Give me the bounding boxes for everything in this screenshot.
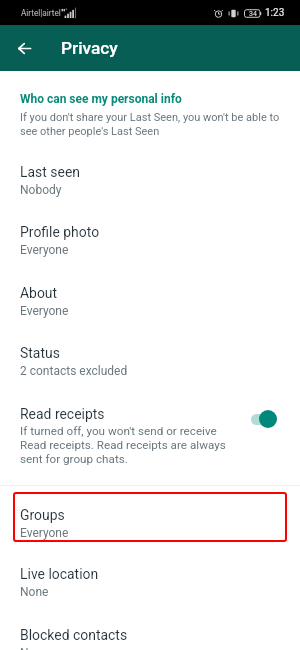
button[interactable]: Blocked contacts (0, 619, 300, 650)
staticText: Everyone (20, 526, 69, 540)
button[interactable]: Back (9, 33, 39, 63)
button[interactable]: Read receipts (0, 398, 300, 478)
staticText: Live location (20, 566, 99, 582)
staticText: If turned off, you won't send or receive… (20, 424, 226, 466)
button[interactable]: Live location (0, 558, 300, 610)
button[interactable]: About (0, 277, 300, 329)
staticText: Privacy (61, 38, 118, 58)
staticText: Blocked contacts (20, 627, 128, 643)
button[interactable]: Profile photo (0, 216, 300, 268)
staticText: Read receipts (20, 406, 105, 422)
staticText: None (20, 585, 49, 599)
staticText: Everyone (20, 243, 69, 257)
staticText: 2 contacts excluded (20, 364, 128, 378)
staticText: Groups (20, 507, 65, 523)
button[interactable]: Status (0, 337, 300, 389)
staticText: Airtel|airtel (21, 8, 61, 18)
button[interactable]: Groups (13, 492, 287, 542)
staticText: About (20, 285, 58, 301)
staticText: Status (20, 345, 60, 361)
staticText: 1:23 (265, 7, 285, 19)
staticText: Everyone (20, 304, 69, 318)
staticText: 34 (249, 10, 257, 18)
staticText: Who can see my personal info (20, 92, 182, 106)
button[interactable]: Last seen (0, 156, 300, 208)
staticText: Nobody (20, 183, 62, 197)
staticText: Last seen (20, 164, 80, 180)
staticText: None (20, 646, 49, 650)
button[interactable]: Read receipts toggle (250, 410, 278, 428)
staticText: Profile photo (20, 224, 100, 240)
staticText: If you don't share your Last Seen, you w… (20, 111, 280, 138)
